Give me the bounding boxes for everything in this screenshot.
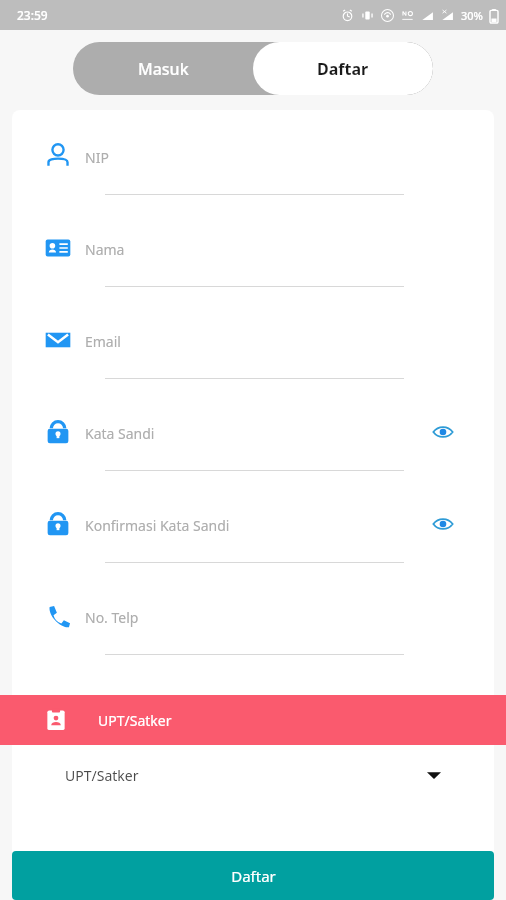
button[interactable]: Show password	[432, 421, 454, 443]
button[interactable]: NIP	[12, 132, 494, 224]
button[interactable]: Masuk	[73, 42, 253, 95]
button[interactable]: Show password	[432, 513, 454, 535]
button[interactable]: Daftar	[12, 851, 494, 900]
button[interactable]: Daftar	[253, 42, 433, 95]
button[interactable]: UPT/Satker	[12, 745, 494, 805]
staticText: 23:59	[17, 7, 48, 23]
staticText: NIP	[85, 148, 109, 167]
staticText: UPT/Satker	[65, 766, 139, 785]
staticText: UPT/Satker	[98, 711, 172, 730]
button[interactable]: Nama	[12, 224, 494, 316]
button[interactable]: Kata Sandi	[12, 408, 494, 500]
staticText: Nama	[85, 240, 125, 259]
staticText: 30%	[461, 8, 483, 23]
button[interactable]: UPT/Satker	[0, 695, 506, 745]
staticText: Daftar	[231, 866, 276, 886]
staticText: Konfirmasi Kata Sandi	[85, 516, 230, 535]
staticText: Daftar	[317, 58, 369, 80]
button[interactable]: No. Telp	[12, 592, 494, 684]
staticText: No. Telp	[85, 608, 139, 627]
button[interactable]: Konfirmasi Kata Sandi	[12, 500, 494, 592]
staticText: Masuk	[138, 58, 189, 80]
button[interactable]: Email	[12, 316, 494, 408]
staticText: Email	[85, 332, 121, 351]
staticText: Kata Sandi	[85, 424, 155, 443]
